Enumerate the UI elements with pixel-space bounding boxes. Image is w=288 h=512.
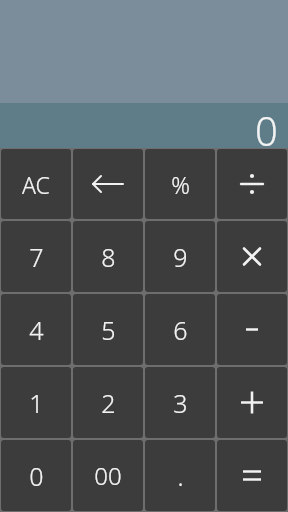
button[interactable]: Backspace — [73, 149, 143, 219]
staticText: 4 — [29, 313, 44, 347]
staticText: 2 — [101, 386, 116, 420]
staticText: 8 — [101, 240, 116, 274]
button[interactable]: 4 — [1, 294, 71, 365]
button[interactable]: Plus — [217, 367, 287, 438]
button[interactable]: 7 — [1, 221, 71, 292]
button[interactable]: 5 — [73, 294, 143, 365]
staticText: 5 — [101, 313, 116, 347]
staticText: AC — [22, 169, 50, 200]
button[interactable]: 9 — [145, 221, 215, 292]
staticText: 7 — [29, 240, 44, 274]
staticText: 3 — [173, 386, 188, 420]
staticText: . — [177, 459, 184, 493]
button[interactable]: 3 — [145, 367, 215, 438]
staticText: 0 — [255, 103, 278, 146]
button[interactable]: 8 — [73, 221, 143, 292]
button[interactable]: 00 — [73, 440, 143, 511]
button[interactable]: AC — [1, 149, 71, 219]
button[interactable]: 6 — [145, 294, 215, 365]
staticText: 9 — [173, 240, 188, 274]
button[interactable]: . — [145, 440, 215, 511]
staticText: 6 — [173, 313, 188, 347]
button[interactable]: Multiply — [217, 221, 287, 292]
button[interactable]: Divide — [217, 149, 287, 219]
staticText: 00 — [94, 459, 122, 492]
button[interactable]: % — [145, 149, 215, 219]
button[interactable]: 0 — [1, 440, 71, 511]
button[interactable]: Minus — [217, 294, 287, 365]
staticText: % — [171, 169, 190, 200]
staticText: 1 — [29, 386, 44, 420]
button[interactable]: Equals — [217, 440, 287, 511]
button[interactable]: 2 — [73, 367, 143, 438]
staticText: 0 — [29, 459, 44, 493]
button[interactable]: 1 — [1, 367, 71, 438]
